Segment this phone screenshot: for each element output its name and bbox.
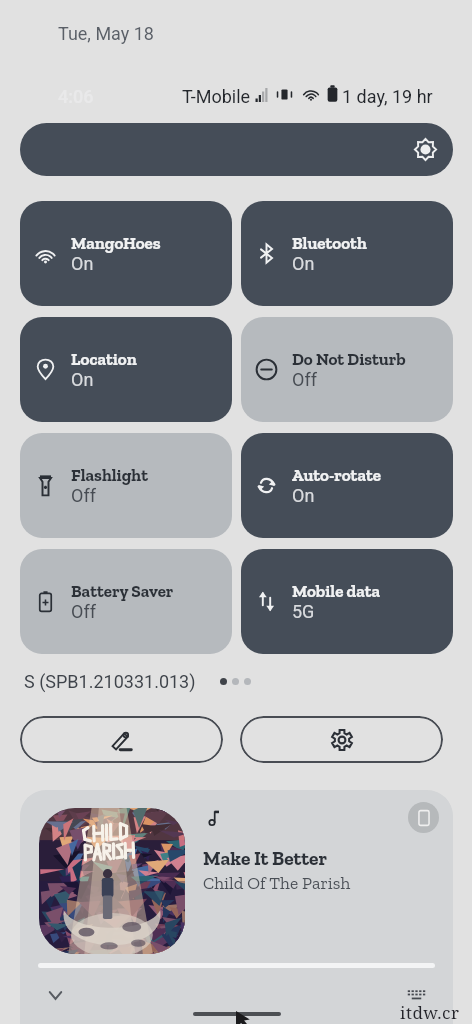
staticText: Battery Saver	[71, 581, 174, 601]
staticText: Off	[71, 485, 96, 506]
staticText: Child Of The Parish	[203, 872, 351, 893]
button[interactable]: Do Not Disturb	[241, 317, 453, 422]
staticText: itdw.cr	[400, 1001, 460, 1024]
staticText: 4:06	[58, 86, 94, 107]
staticText: 1 day, 19 hr	[342, 86, 433, 107]
staticText: Do Not Disturb	[292, 349, 406, 369]
button[interactable]: Keyboard	[400, 978, 433, 1011]
staticText: 5G	[292, 601, 315, 622]
button[interactable]: Edit tiles	[20, 716, 223, 763]
button[interactable]: MangoHoes	[20, 201, 232, 306]
button[interactable]: Output device	[408, 802, 439, 833]
staticText: Make It Better	[203, 847, 328, 870]
staticText: Flashlight	[71, 465, 148, 485]
button[interactable]: Battery Saver	[20, 549, 232, 654]
staticText: Off	[71, 601, 96, 622]
button[interactable]: Brightness	[20, 123, 453, 176]
staticText: Tue, May 18	[58, 23, 154, 44]
staticText: Off	[292, 369, 317, 390]
button[interactable]: Settings	[240, 716, 443, 763]
staticText: On	[71, 369, 94, 390]
staticText: On	[292, 253, 315, 274]
staticText: On	[71, 253, 94, 274]
button[interactable]: Auto-rotate	[241, 433, 453, 538]
staticText: Location	[71, 349, 137, 369]
button[interactable]: Bluetooth	[241, 201, 453, 306]
staticText: Auto-rotate	[292, 465, 381, 485]
button[interactable]: Location	[20, 317, 232, 422]
staticText: On	[292, 485, 315, 506]
button[interactable]: Flashlight	[20, 433, 232, 538]
button[interactable]: Album art	[39, 808, 185, 954]
staticText: Bluetooth	[292, 233, 367, 253]
staticText: T-Mobile	[182, 86, 251, 107]
staticText: Mobile data	[292, 581, 381, 601]
staticText: MangoHoes	[71, 233, 161, 253]
staticText: S (SPB1.210331.013)	[24, 671, 196, 692]
button[interactable]: Mobile data	[241, 549, 453, 654]
button[interactable]: Collapse	[34, 974, 76, 1016]
